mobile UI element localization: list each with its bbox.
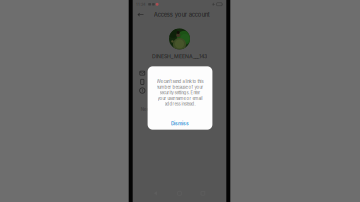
staticText: your username or email (157, 96, 202, 101)
staticText: +91 ••••••••99 (149, 82, 177, 87)
staticText: security settings. Enter (159, 90, 200, 95)
button[interactable]: Need more help? (133, 106, 226, 112)
button[interactable]: Email (133, 69, 226, 77)
button[interactable]: Need more help? (133, 86, 226, 95)
staticText: number because of your (156, 85, 203, 90)
staticText: address instead. (164, 101, 195, 106)
staticText: Dismiss (171, 121, 189, 126)
staticText: Need more help? (149, 85, 187, 91)
button[interactable]: Phone number (133, 77, 226, 86)
staticText: Phone number (149, 77, 183, 82)
staticText: DINESH_MEENA___143 (152, 53, 207, 59)
staticText: Learn about account recovery (149, 91, 199, 96)
staticText: 11:24 (136, 2, 146, 7)
button[interactable]: Dismiss (148, 115, 212, 131)
staticText: Access your account (154, 11, 210, 18)
button[interactable]: Back (133, 8, 226, 21)
staticText: Need more help? (141, 107, 179, 112)
staticText: We can't send a link to this (156, 79, 203, 84)
